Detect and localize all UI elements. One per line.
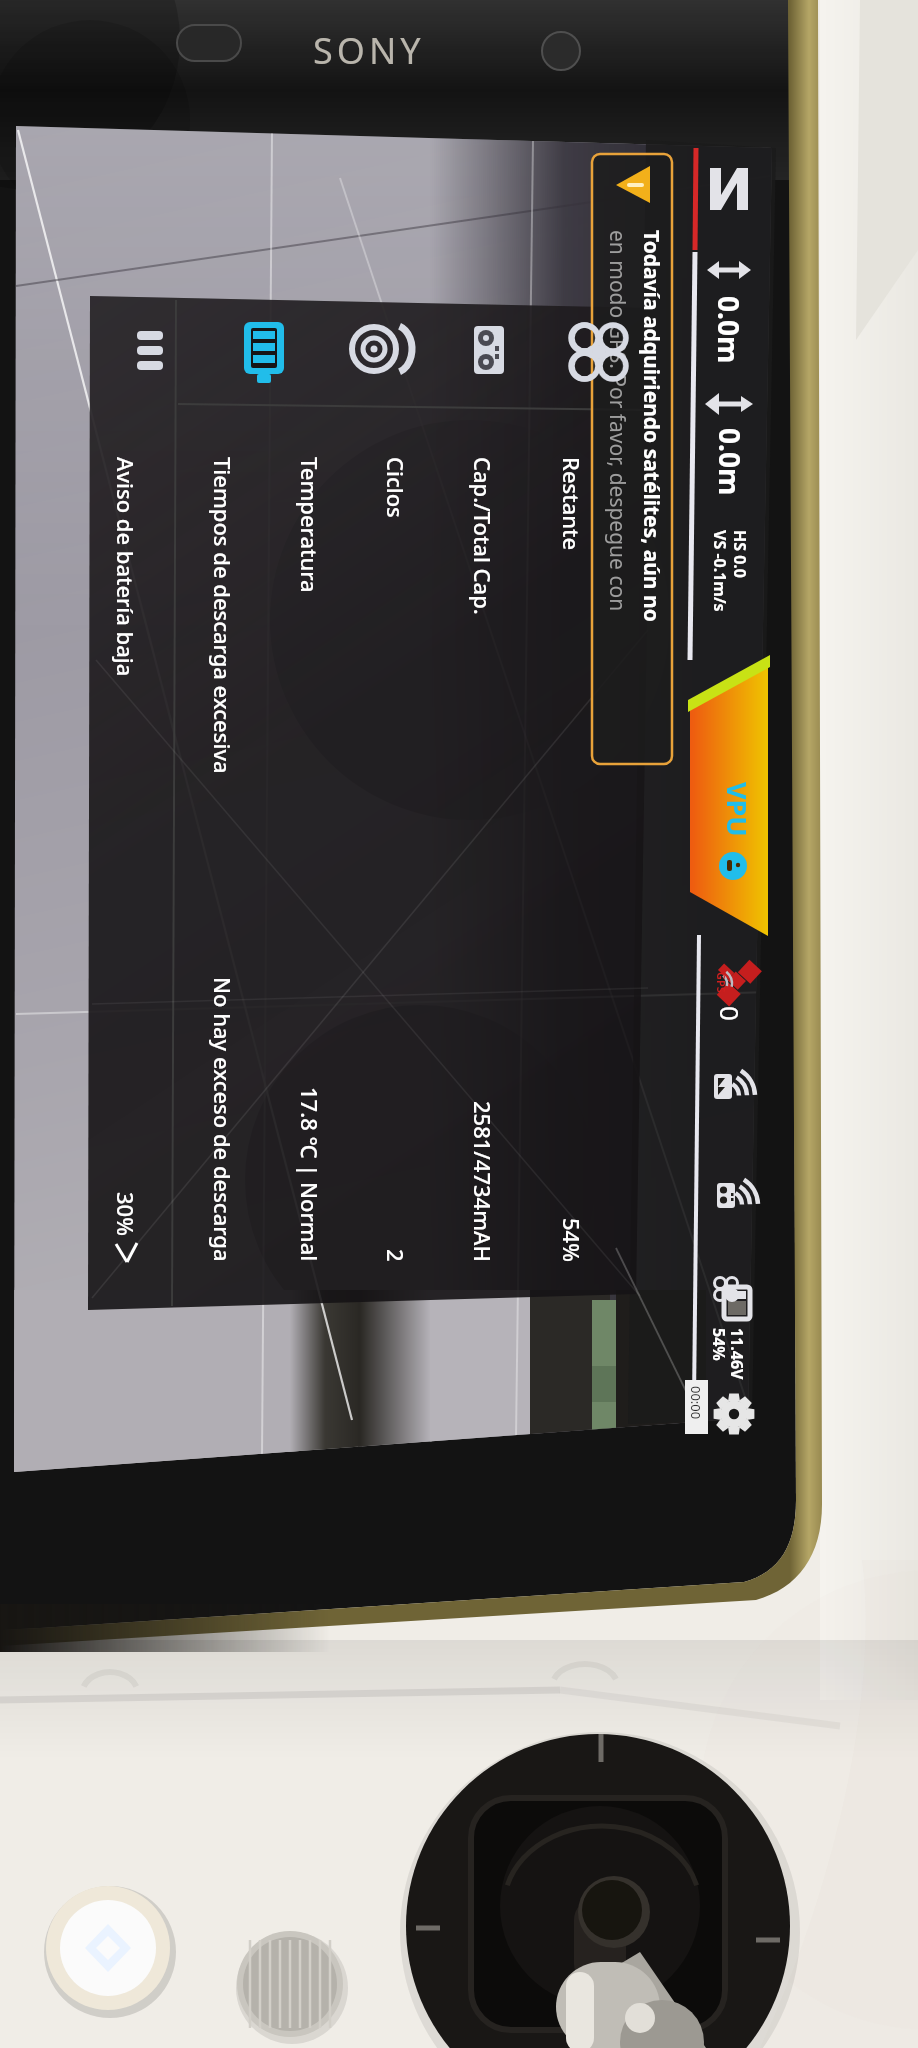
button[interactable]: Cap./Total Cap. 2581/4734mAH [460, 410, 528, 1300]
staticText: GPS [714, 972, 729, 993]
staticText: Tiempos de descarga excesiva [208, 457, 238, 774]
button[interactable]: Power button [46, 1886, 170, 2010]
staticText: 2581/4734mAH [468, 1101, 498, 1262]
staticText: SONY [313, 26, 425, 68]
button[interactable]: Temperatura 17.8 C Normal [285, 410, 353, 1300]
button[interactable]: Remote controller [445, 306, 533, 394]
staticText: Todavía adquiriendo satélites, aún no [637, 230, 666, 622]
staticText: 00:00 [687, 1386, 705, 1420]
staticText: HS 0.0 [729, 530, 751, 579]
staticText: 2 [381, 1249, 411, 1262]
staticText: VS -0.1m/s [709, 530, 731, 612]
button[interactable]: Aircraft [554, 308, 642, 396]
button[interactable]: Aviso de batería baja 30% [92, 410, 176, 1300]
staticText: No hay exceso de descarga [208, 977, 238, 1262]
staticText: 11.46V [726, 1328, 748, 1380]
button[interactable]: Tiempos de descarga excesiva [184, 410, 266, 1300]
staticText: Temperatura [295, 457, 325, 593]
staticText: 0.0m [710, 296, 748, 364]
staticText: Restante [557, 457, 587, 551]
staticText: VPU [719, 782, 756, 837]
staticText: 54% [557, 1218, 587, 1262]
button[interactable]: Ciclos 2 [372, 410, 440, 1300]
button[interactable]: Menu [106, 308, 194, 396]
staticText: Aviso de batería baja [111, 457, 141, 677]
button[interactable]: Camera dial [237, 1931, 343, 2037]
staticText: Ciclos [381, 457, 411, 518]
staticText: 17.8 ℃ | Normal [295, 1087, 325, 1262]
button[interactable]: Settings [708, 1378, 760, 1430]
staticText: 0 [713, 1006, 748, 1021]
staticText: 30% [111, 1192, 141, 1236]
button[interactable]: Battery [220, 306, 308, 394]
button[interactable]: Restante 54% [548, 410, 616, 1300]
staticText: en modo GPS. Por favor, despegue con [603, 230, 632, 612]
staticText: Cap./Total Cap. [468, 457, 498, 615]
staticText: 0.0m [711, 428, 749, 496]
button[interactable]: Gimbal [332, 305, 420, 393]
staticText: 54% [708, 1328, 730, 1361]
